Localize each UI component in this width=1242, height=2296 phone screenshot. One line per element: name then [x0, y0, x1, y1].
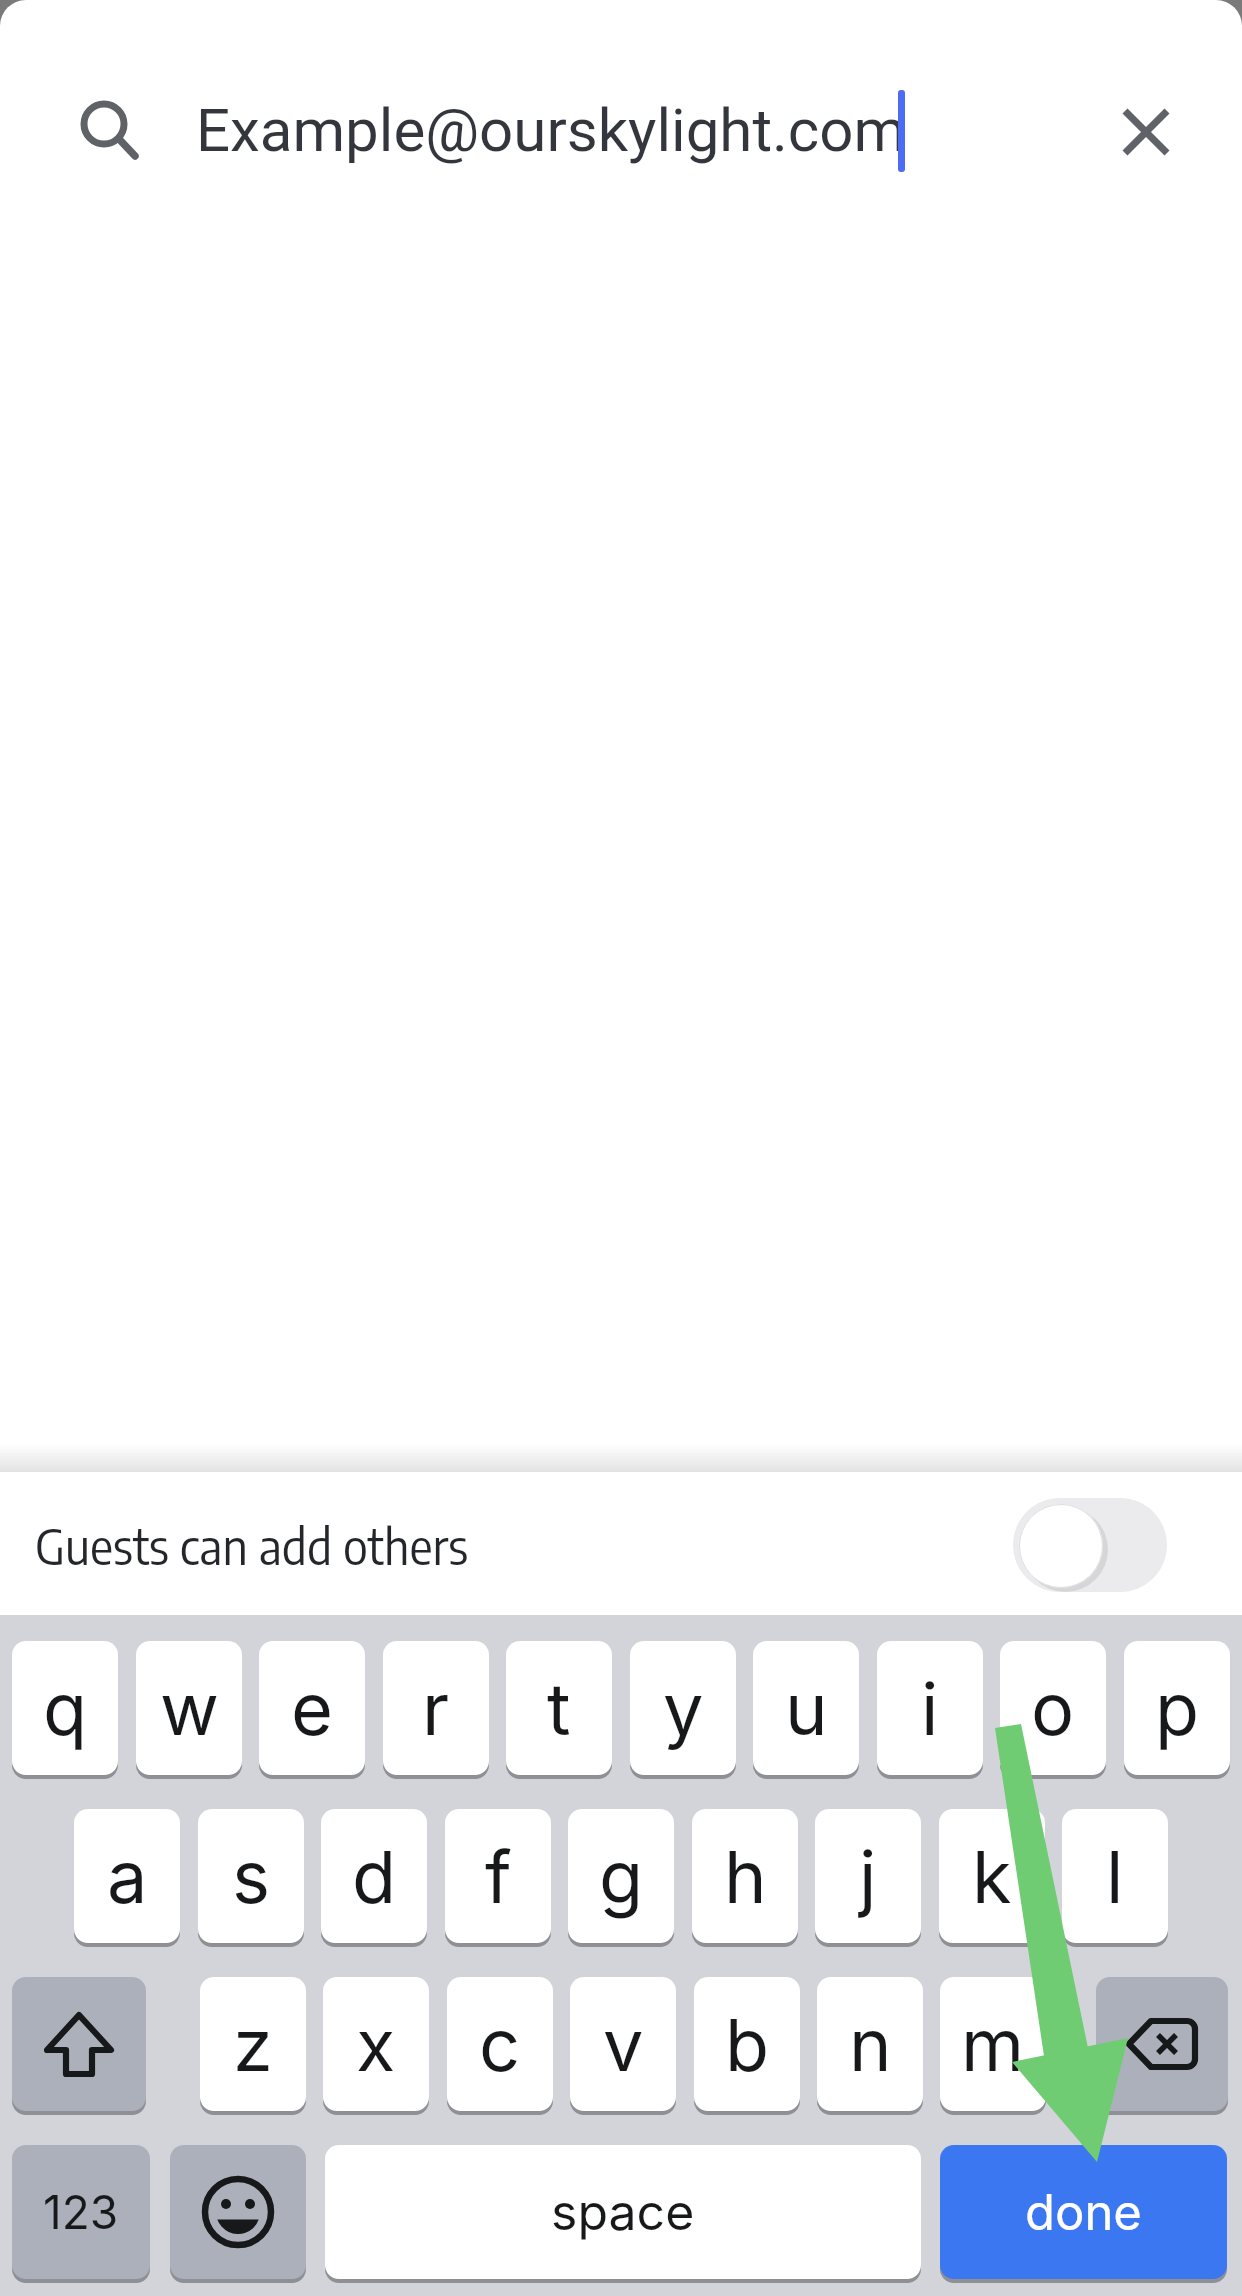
- button[interactable]: [1108, 94, 1184, 170]
- button[interactable]: w: [136, 1641, 242, 1775]
- staticText: c: [479, 2001, 521, 2088]
- staticText: x: [356, 2001, 396, 2088]
- staticText: r: [422, 1665, 450, 1752]
- button[interactable]: m: [940, 1977, 1046, 2111]
- button[interactable]: n: [817, 1977, 923, 2111]
- staticText: e: [291, 1665, 333, 1752]
- button[interactable]: t: [506, 1641, 612, 1775]
- button[interactable]: p: [1124, 1641, 1230, 1775]
- staticText: q: [43, 1665, 88, 1752]
- button[interactable]: q: [12, 1641, 118, 1775]
- button[interactable]: f: [445, 1809, 551, 1943]
- staticText: y: [663, 1665, 704, 1752]
- staticText: t: [547, 1665, 571, 1752]
- button[interactable]: z: [200, 1977, 306, 2111]
- staticText: l: [1106, 1833, 1124, 1920]
- button[interactable]: [0, 40, 1242, 220]
- staticText: g: [599, 1833, 644, 1920]
- staticText: Guests can add others: [35, 1516, 469, 1576]
- staticText: f: [485, 1833, 512, 1920]
- button[interactable]: [170, 2145, 306, 2279]
- button[interactable]: g: [568, 1809, 674, 1943]
- staticText: p: [1155, 1665, 1200, 1752]
- button[interactable]: [1013, 1498, 1167, 1592]
- staticText: o: [1031, 1665, 1075, 1752]
- staticText: u: [785, 1665, 828, 1752]
- staticText: a: [107, 1833, 148, 1920]
- button[interactable]: [12, 1977, 146, 2111]
- button[interactable]: v: [570, 1977, 676, 2111]
- staticText: w: [160, 1665, 219, 1752]
- button[interactable]: j: [815, 1809, 921, 1943]
- button[interactable]: 123: [12, 2145, 150, 2279]
- button[interactable]: k: [939, 1809, 1045, 1943]
- staticText: i: [921, 1665, 939, 1752]
- button[interactable]: e: [259, 1641, 365, 1775]
- button[interactable]: a: [74, 1809, 180, 1943]
- button[interactable]: [1096, 1977, 1228, 2111]
- button[interactable]: s: [198, 1809, 304, 1943]
- button[interactable]: Guests can add others: [0, 1472, 1242, 1615]
- staticText: m: [961, 2001, 1025, 2088]
- button[interactable]: c: [447, 1977, 553, 2111]
- button[interactable]: i: [877, 1641, 983, 1775]
- staticText: k: [972, 1833, 1012, 1920]
- staticText: space: [551, 2182, 695, 2242]
- staticText: b: [725, 2001, 770, 2088]
- staticText: Example@ourskylight.com: [196, 95, 907, 165]
- button[interactable]: o: [1000, 1641, 1106, 1775]
- button[interactable]: done: [940, 2145, 1227, 2279]
- button[interactable]: r: [383, 1641, 489, 1775]
- button[interactable]: u: [753, 1641, 859, 1775]
- staticText: d: [352, 1833, 397, 1920]
- staticText: 123: [43, 2184, 119, 2240]
- button[interactable]: l: [1062, 1809, 1168, 1943]
- button[interactable]: space: [325, 2145, 921, 2279]
- staticText: n: [849, 2001, 892, 2088]
- staticText: h: [724, 1833, 767, 1920]
- button[interactable]: y: [630, 1641, 736, 1775]
- staticText: j: [859, 1833, 877, 1920]
- staticText: s: [232, 1833, 271, 1920]
- staticText: v: [603, 2001, 644, 2088]
- button[interactable]: b: [694, 1977, 800, 2111]
- staticText: z: [233, 2001, 273, 2088]
- button[interactable]: h: [692, 1809, 798, 1943]
- button[interactable]: d: [321, 1809, 427, 1943]
- button[interactable]: x: [323, 1977, 429, 2111]
- staticText: done: [1025, 2183, 1142, 2242]
